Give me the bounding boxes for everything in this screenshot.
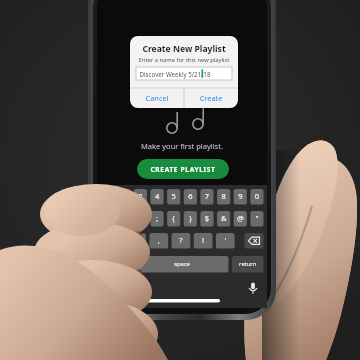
button[interactable]: Create New Playlist dialog on phone held… — [0, 0, 360, 360]
